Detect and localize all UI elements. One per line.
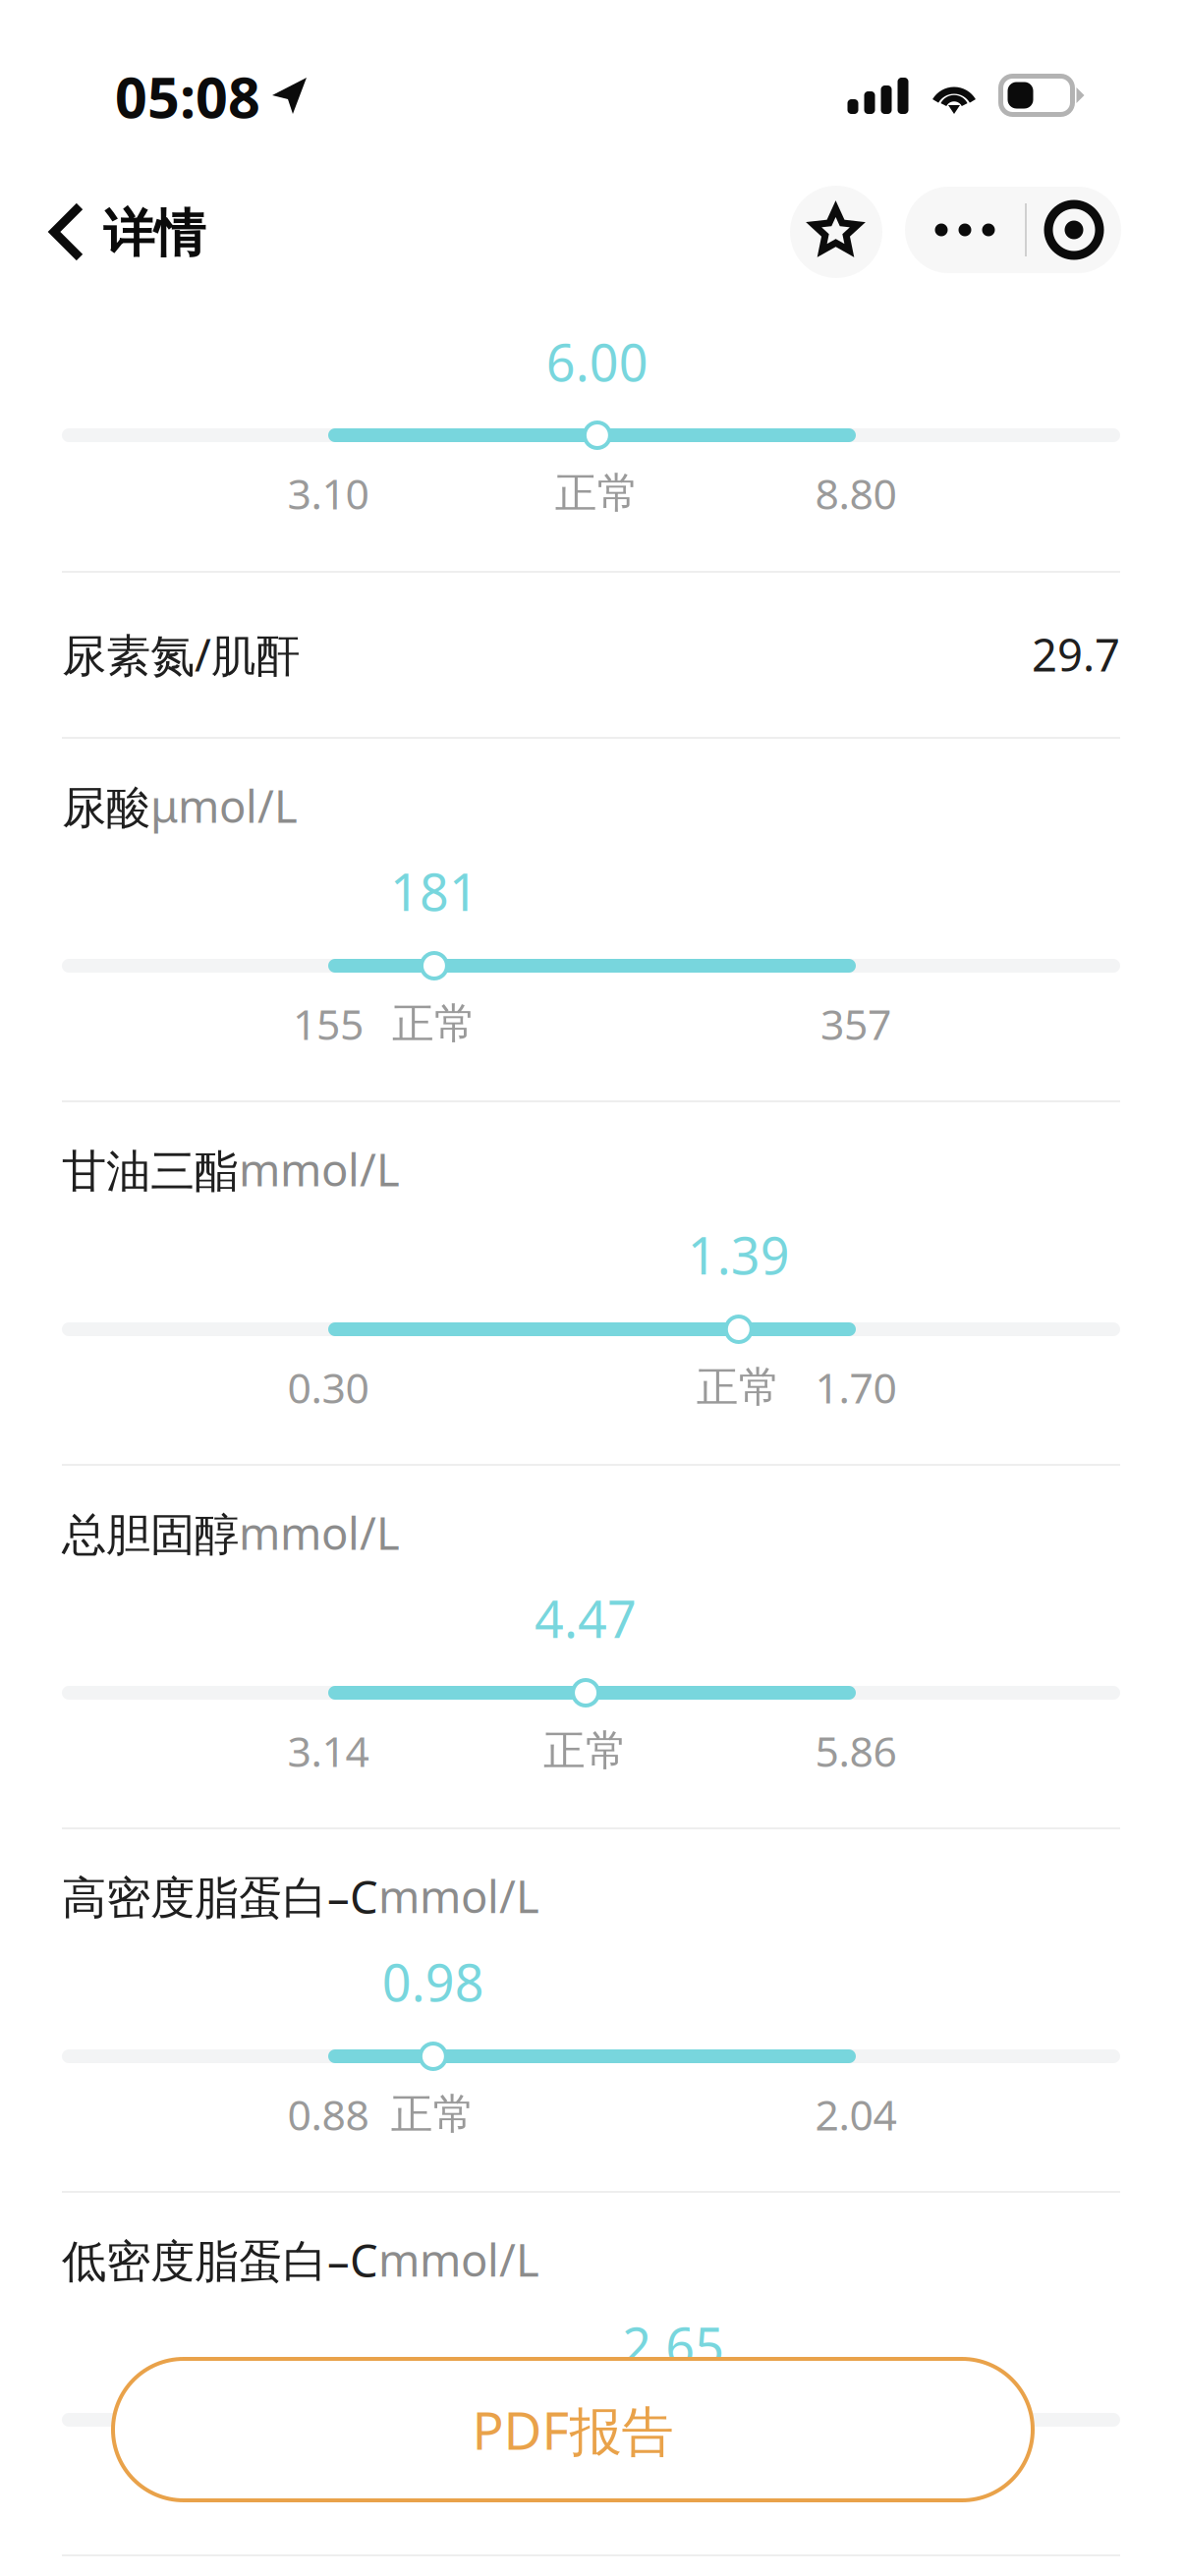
staticText: 正常: [391, 2089, 475, 2140]
staticText: 正常: [555, 467, 640, 519]
staticText: 正常: [392, 998, 476, 1049]
staticText: μmol/L: [150, 776, 298, 835]
staticText: 0.88: [287, 2086, 369, 2142]
staticText: 155: [293, 996, 364, 1052]
staticText: mmol/L: [239, 1139, 400, 1199]
staticText: 6.00: [546, 328, 648, 396]
staticText: 2.04: [815, 2086, 897, 2142]
staticText: 高密度脂蛋白–C: [62, 1867, 378, 1926]
staticText: 详情: [103, 202, 205, 265]
staticText: 4.47: [535, 1584, 637, 1652]
staticText: 1.39: [688, 1221, 790, 1289]
staticText: 1.89: [287, 2450, 369, 2506]
staticText: 8.80: [815, 465, 897, 521]
staticText: mmol/L: [239, 1503, 400, 1562]
staticText: 低密度脂蛋白–C: [62, 2230, 378, 2290]
staticText: 总胆固醇: [62, 1508, 239, 1562]
staticText: 3.10: [287, 465, 369, 521]
staticText: 3.14: [287, 1723, 369, 1779]
staticText: mmol/L: [378, 2230, 539, 2289]
button[interactable]: More options: [905, 187, 1121, 273]
staticText: 357: [820, 996, 891, 1052]
staticText: 甘油三酯: [62, 1144, 239, 1199]
button[interactable]: Favorite: [790, 186, 882, 278]
staticText: 4.10: [815, 2450, 897, 2506]
staticText: mmol/L: [378, 1866, 539, 1925]
staticText: 1.70: [815, 1359, 897, 1415]
staticText: 尿酸: [62, 781, 150, 835]
staticText: 05:08: [115, 59, 260, 134]
staticText: 0.98: [382, 1948, 484, 2016]
staticText: 正常: [543, 1725, 628, 1776]
button[interactable]: PDF报告: [113, 2359, 1033, 2500]
staticText: 尿素氮/肌酐: [62, 625, 300, 684]
staticText: 2.65: [622, 2311, 724, 2379]
staticText: 0.30: [287, 1359, 369, 1415]
staticText: 正常: [631, 2452, 716, 2503]
button[interactable]: 详情: [1, 185, 239, 279]
staticText: PDF报告: [472, 2395, 674, 2465]
staticText: 181: [390, 857, 478, 925]
staticText: 正常: [696, 1361, 781, 1413]
staticText: 5.86: [815, 1723, 897, 1779]
staticText: 29.7: [1032, 625, 1120, 684]
